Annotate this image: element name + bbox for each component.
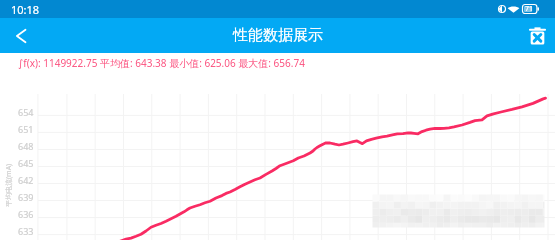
staticText: ∫f(x): 1149922.75 平均值: 643.38 最小值: 625.0…	[18, 56, 305, 70]
staticText: 651	[18, 123, 34, 135]
staticText: 636	[18, 208, 34, 220]
staticText: 633	[18, 225, 34, 237]
button[interactable]: Delete	[521, 18, 555, 53]
staticText: 639	[18, 191, 34, 203]
staticText: 648	[18, 140, 34, 152]
staticText: 平均电流(mA)	[4, 163, 14, 207]
staticText: 654	[18, 106, 34, 118]
button[interactable]: Back	[0, 18, 36, 53]
staticText: 71	[525, 4, 534, 14]
staticText: 642	[18, 174, 34, 186]
staticText: 645	[18, 157, 34, 169]
staticText: 性能数据展示	[233, 26, 323, 45]
staticText: 10:18	[11, 2, 40, 17]
